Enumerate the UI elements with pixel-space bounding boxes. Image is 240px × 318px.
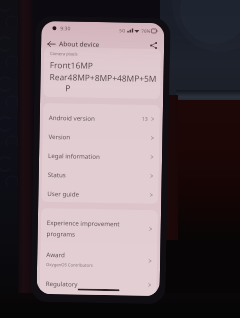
- staticText: Regulatory: [46, 279, 78, 288]
- staticText: Award: [46, 250, 65, 258]
- button[interactable]: Experience improvement programs: [40, 208, 158, 248]
- staticText: Status: [48, 170, 67, 178]
- button[interactable]: Legal information: [42, 145, 159, 166]
- button[interactable]: Status: [42, 164, 159, 185]
- button[interactable]: Share: [147, 39, 160, 52]
- staticText: 9:30: [60, 25, 70, 32]
- button[interactable]: Award: [40, 246, 157, 274]
- staticText: OxygenOS Contributors: [46, 262, 93, 269]
- staticText: About device: [59, 39, 100, 49]
- staticText: Version: [48, 132, 70, 140]
- staticText: 13: [142, 115, 148, 122]
- staticText: 5G: [119, 27, 125, 33]
- staticText: 76%: [141, 28, 150, 34]
- button[interactable]: Version: [42, 126, 160, 147]
- staticText: Camera pixels: [50, 51, 78, 58]
- staticText: Legal information: [48, 151, 100, 160]
- staticText: Android version: [49, 113, 96, 122]
- button[interactable]: Android version: [43, 107, 160, 128]
- staticText: Rear48MP+8MP+48MP+5M: [49, 71, 157, 84]
- button[interactable]: Back: [44, 37, 57, 50]
- staticText: User guide: [47, 189, 79, 198]
- staticText: Front16MP: [50, 59, 94, 71]
- staticText: P: [65, 82, 71, 93]
- button[interactable]: Camera pixels: [43, 47, 161, 99]
- button[interactable]: User guide: [41, 183, 158, 204]
- staticText: Experience improvement programs: [47, 218, 127, 238]
- button[interactable]: Regulatory: [40, 272, 157, 295]
